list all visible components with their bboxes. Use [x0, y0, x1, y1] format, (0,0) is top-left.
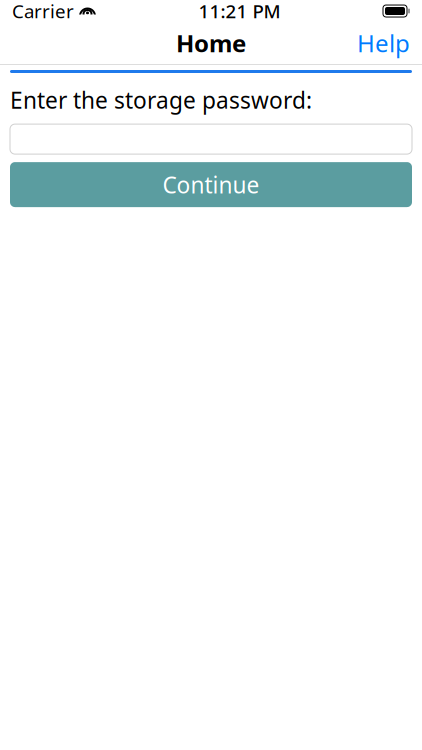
staticText: 11:21 PM [198, 0, 280, 23]
staticText: Enter the storage password: [10, 85, 312, 115]
button[interactable] [10, 124, 412, 154]
staticText: Help [357, 27, 410, 59]
staticText: Home [176, 27, 246, 59]
staticText: Carrier [12, 0, 74, 23]
staticText: Continue [162, 170, 259, 200]
button[interactable]: Help [345, 21, 422, 65]
button[interactable]: Continue [10, 162, 412, 207]
